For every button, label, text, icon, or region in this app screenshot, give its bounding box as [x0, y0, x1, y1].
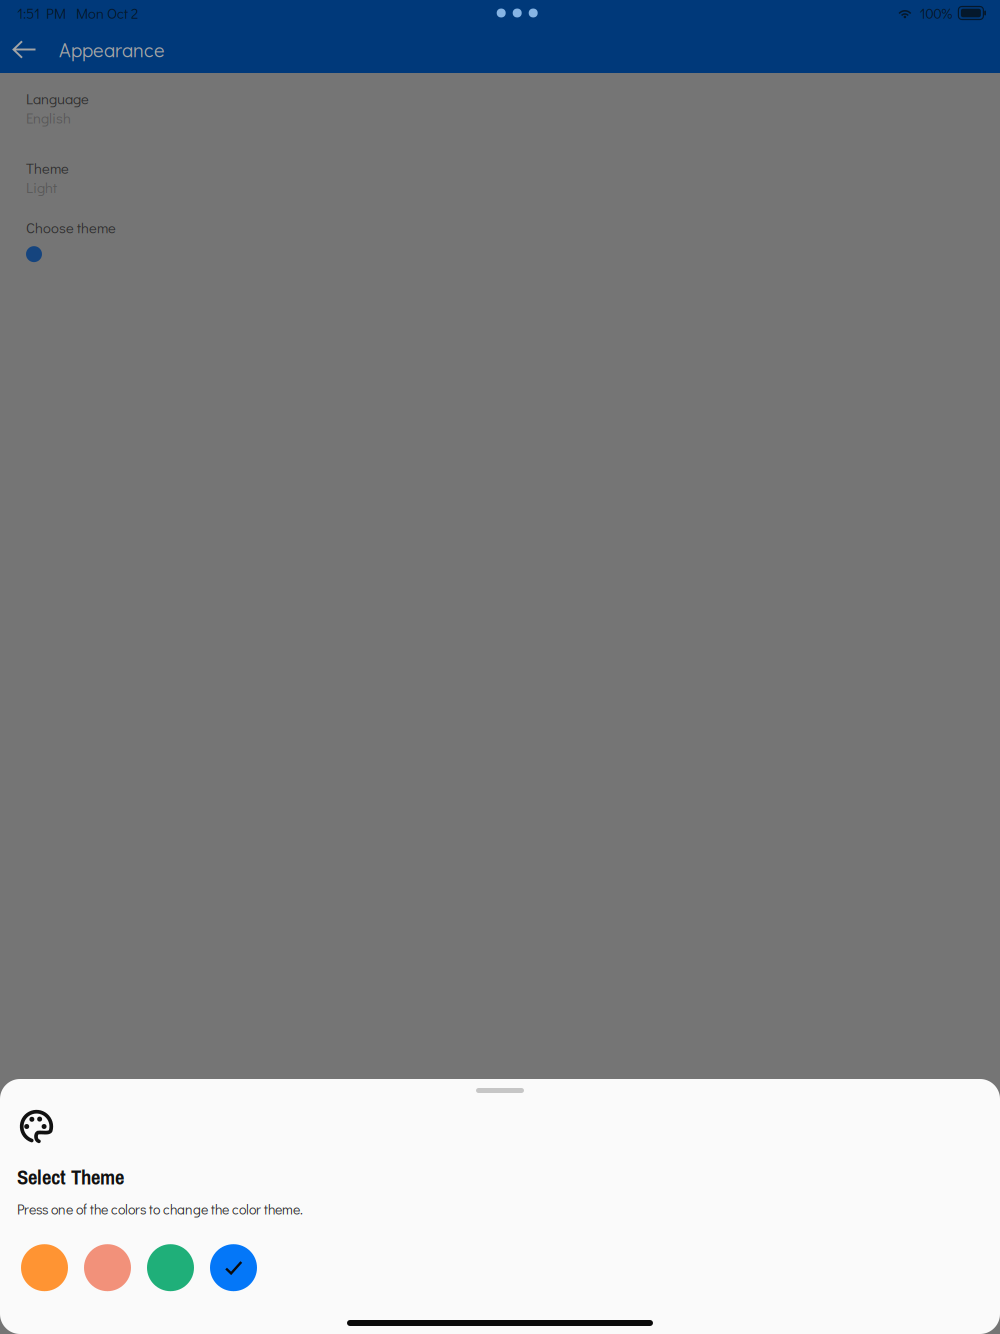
staticText: Appearance [59, 36, 165, 63]
staticText: Select Theme [17, 1163, 124, 1191]
staticText: Language [26, 89, 89, 108]
button[interactable]: Orange theme [21, 1244, 68, 1291]
button[interactable]: Back [2, 26, 46, 72]
staticText: Theme [26, 158, 69, 178]
staticText: Light [26, 178, 57, 197]
button[interactable]: Blue theme, selected [210, 1244, 257, 1291]
staticText: Mon Oct 2 [76, 3, 138, 23]
staticText: 100% [919, 3, 952, 23]
staticText: 1:51 PM [17, 3, 66, 23]
staticText: Choose theme [26, 218, 116, 237]
staticText: Press one of the colors to change the co… [17, 1200, 303, 1218]
button[interactable]: Green theme [147, 1244, 194, 1291]
staticText: English [26, 108, 71, 127]
button[interactable]: Salmon theme [84, 1244, 131, 1291]
